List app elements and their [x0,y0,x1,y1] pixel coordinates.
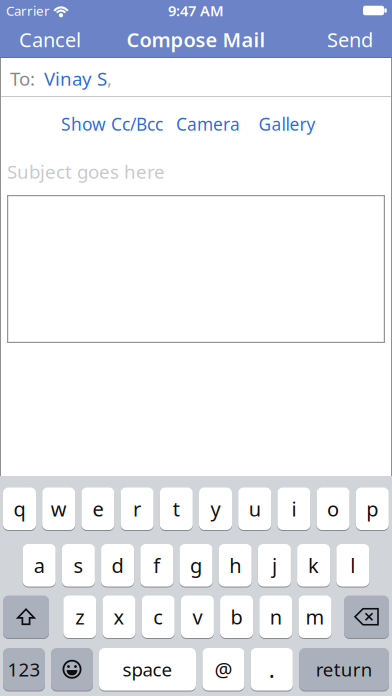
button[interactable]: i [277,487,310,530]
button[interactable]: d [101,543,134,587]
staticText: d [112,552,124,579]
button[interactable]: a [23,543,56,587]
button[interactable]: t [160,487,193,530]
button[interactable]: Shift [3,595,49,638]
staticText: . [269,654,275,684]
button[interactable]: Delete [344,595,389,638]
button[interactable]: g [179,543,212,587]
button[interactable]: f [140,543,173,587]
button[interactable]: y [199,487,232,530]
button[interactable]: space [99,647,196,691]
button[interactable]: j [258,543,291,587]
staticText: c [153,603,163,630]
button[interactable]: Cancel [19,26,81,53]
staticText: p [366,495,378,522]
staticText: y [210,495,220,522]
staticText: w [51,495,67,522]
button[interactable]: return [299,647,389,691]
button[interactable]: v [181,595,214,638]
button[interactable]: e [81,487,114,530]
button[interactable]: Vinay S [35,66,107,91]
button[interactable]: Show Cc/Bcc [61,112,163,135]
button[interactable]: q [3,487,36,530]
staticText: 123 [7,657,40,682]
button[interactable]: h [219,543,252,587]
staticText: t [173,495,180,522]
staticText: v [192,603,202,630]
staticText: n [270,603,282,630]
button[interactable]: . [251,647,293,691]
button[interactable]: z [63,595,96,638]
staticText: q [13,495,25,522]
staticText: f [153,552,160,579]
staticText: l [350,552,355,579]
staticText: u [249,495,261,522]
button[interactable]: m [298,595,331,638]
button[interactable]: n [259,595,292,638]
staticText: Compose Mail [126,26,265,53]
staticText: r [133,495,141,522]
button[interactable]: b [220,595,253,638]
staticText: Vinay S [44,66,107,91]
button[interactable]: Send [327,26,373,53]
staticText: g [190,552,202,579]
staticText: a [34,552,45,579]
staticText: return [316,657,373,682]
staticText: k [308,552,319,579]
button[interactable]: Gallery [258,112,315,135]
staticText: Cancel [19,26,81,53]
staticText: , [107,66,112,91]
staticText: z [75,603,84,630]
staticText: Camera [176,112,240,135]
staticText: Carrier [6,2,50,19]
button[interactable]: w [42,487,75,530]
button[interactable]: u [238,487,271,530]
button[interactable]: p [356,487,389,530]
staticText: @ [214,656,232,683]
button[interactable]: 123 [3,647,45,691]
button[interactable]: @ [202,647,244,691]
staticText: space [122,657,172,682]
button[interactable]: s [62,543,95,587]
staticText: x [113,603,124,630]
button[interactable]: k [297,543,330,587]
button[interactable]: c [142,595,175,638]
staticText: 9:47 AM [168,1,224,20]
button[interactable]: Emoji [51,647,93,691]
staticText: To: [10,66,35,91]
button[interactable]: Camera [176,112,240,135]
staticText: i [291,495,296,522]
button[interactable]: x [102,595,135,638]
staticText: b [231,603,243,630]
staticText: e [92,495,103,522]
button[interactable]: r [121,487,154,530]
staticText: o [327,495,339,522]
button[interactable]: o [317,487,350,530]
staticText: Subject goes here [7,159,165,184]
staticText: j [272,552,277,579]
staticText: m [305,603,324,630]
staticText: h [229,552,241,579]
staticText: Gallery [258,112,315,135]
button[interactable]: l [336,543,369,587]
staticText: s [73,552,83,579]
staticText: Send [327,26,373,53]
staticText: Show Cc/Bcc [61,112,163,135]
